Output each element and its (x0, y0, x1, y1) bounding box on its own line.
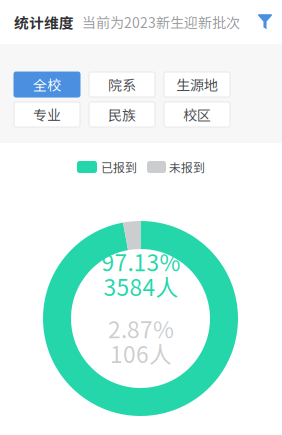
staticText: 97.13% (101, 245, 180, 278)
button[interactable]: 全校 (14, 72, 80, 97)
button[interactable]: 生源地 (164, 72, 230, 97)
staticText: 2.87% (108, 312, 174, 345)
staticText: 106人 (110, 337, 172, 370)
staticText: 校区 (183, 104, 211, 125)
staticText: 已报到 (101, 158, 137, 176)
button[interactable]: 民族 (89, 102, 155, 127)
button[interactable]: 专业 (14, 102, 80, 127)
staticText: 3584人 (103, 270, 178, 303)
button[interactable]: 院系 (89, 72, 155, 97)
staticText: 生源地 (176, 74, 218, 95)
staticText: 统计维度 (14, 11, 74, 33)
staticText: 专业 (33, 104, 61, 125)
button[interactable]: 校区 (164, 102, 230, 127)
button[interactable]: Filter (252, 9, 278, 35)
staticText: 当前为2023新生迎新批次 (82, 12, 240, 32)
staticText: 民族 (108, 104, 136, 125)
staticText: 全校 (33, 74, 61, 95)
staticText: 未报到 (169, 158, 205, 176)
staticText: 院系 (108, 74, 136, 95)
